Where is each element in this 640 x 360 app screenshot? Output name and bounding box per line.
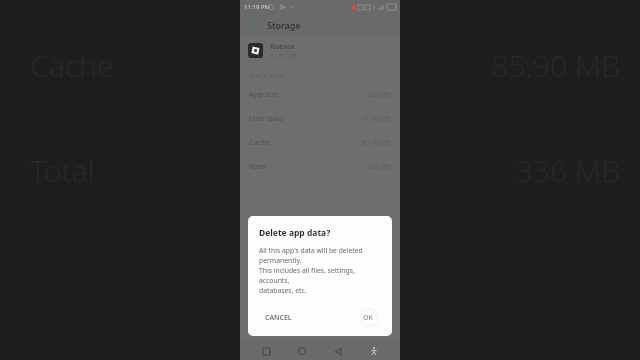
staticText: Roblox: [270, 41, 295, 51]
staticText: Delete app data?: [259, 227, 331, 239]
staticText: 85.90 MB: [362, 138, 391, 147]
staticText: 336 MB: [368, 162, 391, 171]
staticText: All this app's data will be deleted perm…: [259, 246, 382, 295]
button[interactable]: Roblox: [240, 36, 400, 64]
staticText: 11:19 PM: [244, 3, 271, 11]
staticText: App size: [249, 89, 279, 99]
staticText: OK: [363, 313, 373, 323]
button[interactable]: Home: [294, 343, 310, 359]
button[interactable]: Recents: [258, 343, 274, 359]
staticText: 2.551.506: [270, 52, 298, 60]
staticText: 220 MB: [368, 90, 391, 99]
staticText: Cache: [249, 137, 271, 147]
button[interactable]: OK: [353, 305, 382, 330]
staticText: Total: [249, 161, 267, 171]
staticText: SPACE USED: [249, 72, 284, 80]
staticText: User data: [249, 113, 284, 123]
staticText: Storage: [267, 19, 301, 31]
button[interactable]: Back: [246, 18, 260, 32]
button[interactable]: Back: [330, 343, 346, 359]
staticText: 11.60 MB: [362, 114, 391, 123]
button[interactable]: Accessibility: [366, 343, 382, 359]
button[interactable]: CANCEL: [259, 309, 298, 327]
staticText: CANCEL: [265, 313, 292, 323]
